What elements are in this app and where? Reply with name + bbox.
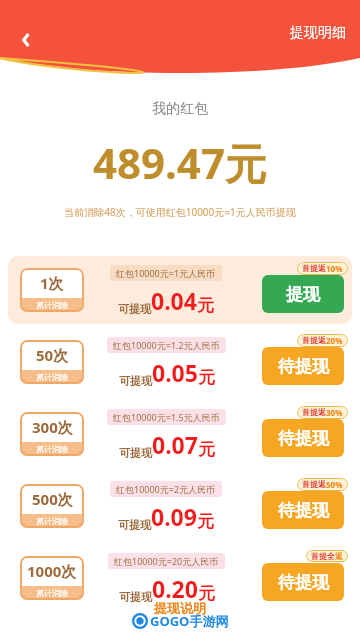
button[interactable]: 1次 (8, 256, 352, 324)
staticText: 10% (326, 263, 343, 274)
staticText: 红包10000元=1.5元人民币 (113, 411, 220, 423)
staticText: 累计消除 (36, 588, 68, 598)
staticText: 首提返 (302, 263, 326, 273)
button[interactable]: 500次 (8, 472, 352, 540)
button[interactable]: 50次 (8, 328, 352, 396)
staticText: 可提现 (118, 518, 151, 532)
staticText: 首提全 (311, 551, 335, 561)
staticText: 首提返 (302, 335, 326, 345)
staticText: 累计消除 (36, 444, 68, 454)
staticText: 返 (335, 551, 343, 561)
staticText: 50% (326, 479, 343, 490)
staticText: 红包10000元=2元人民币 (116, 483, 216, 495)
staticText: 首提返 (302, 407, 326, 417)
button[interactable]: 提现 (262, 275, 344, 313)
button[interactable]: 提现明细 (276, 18, 360, 48)
button[interactable]: 300次 (8, 400, 352, 468)
staticText: 累计消除 (36, 372, 68, 382)
staticText: 可提现 (118, 302, 151, 316)
staticText: 红包10000元=1元人民币 (116, 267, 216, 279)
staticText: 元 (197, 511, 214, 532)
staticText: 我的红包 (152, 100, 208, 118)
staticText: 提现 (286, 284, 320, 305)
staticText: 可提现 (119, 374, 152, 388)
staticText: 提现说明 (154, 600, 206, 616)
staticText: 提现明细 (290, 24, 346, 42)
staticText: 0.04 (151, 285, 197, 316)
staticText: GOGO手游网 (150, 612, 229, 630)
button[interactable]: 1000次 (8, 544, 352, 612)
button[interactable]: 待提现 (262, 491, 344, 529)
staticText: 0.05 (152, 357, 198, 388)
staticText: 待提现 (278, 356, 329, 377)
staticText: 1次 (40, 273, 64, 293)
button[interactable]: 待提现 (262, 563, 344, 601)
staticText: 20% (326, 335, 343, 346)
staticText: 0.20 (152, 573, 198, 604)
staticText: 元 (197, 295, 214, 316)
staticText: 300次 (32, 417, 73, 437)
staticText: 红包10000元=20元人民币 (114, 555, 219, 567)
staticText: 可提现 (119, 590, 152, 604)
button[interactable]: Back (4, 18, 48, 62)
staticText: 0.09 (151, 501, 197, 532)
staticText: 500次 (32, 489, 73, 509)
button[interactable]: 待提现 (262, 347, 344, 385)
staticText: 1000次 (27, 561, 77, 581)
staticText: 当前消除48次，可使用红包10000元=1元人民币提现 (64, 205, 296, 219)
staticText: 元 (198, 367, 215, 388)
staticText: 30% (326, 407, 343, 418)
staticText: 累计消除 (36, 516, 68, 526)
staticText: 0.07 (152, 429, 198, 460)
staticText: 累计消除 (36, 300, 68, 310)
button[interactable]: 提现说明 (142, 596, 218, 620)
staticText: 元 (198, 583, 215, 604)
staticText: 可提现 (119, 446, 152, 460)
staticText: 元 (198, 439, 215, 460)
staticText: 首提返 (302, 479, 326, 489)
staticText: 待提现 (278, 500, 329, 521)
staticText: 红包10000元=1.2元人民币 (113, 339, 220, 351)
staticText: 待提现 (278, 572, 329, 593)
staticText: 50次 (36, 345, 69, 365)
staticText: 489.47元 (93, 134, 267, 191)
staticText: 待提现 (278, 428, 329, 449)
button[interactable]: 待提现 (262, 419, 344, 457)
